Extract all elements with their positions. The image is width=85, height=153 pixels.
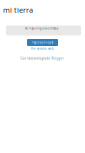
- staticText: Ver versión web: [31, 47, 54, 51]
- staticText: Blogger: [51, 57, 63, 60]
- staticText: No hay ninguna entrada.: [24, 27, 58, 30]
- button[interactable]: Blogger: [51, 57, 63, 60]
- staticText: Página principal: [31, 41, 53, 44]
- button[interactable]: Página principal: [27, 39, 58, 46]
- staticText: Con la tecnología de: [20, 57, 51, 60]
- button[interactable]: Ver versión web: [0, 47, 85, 51]
- staticText: mi tierra: [3, 5, 33, 15]
